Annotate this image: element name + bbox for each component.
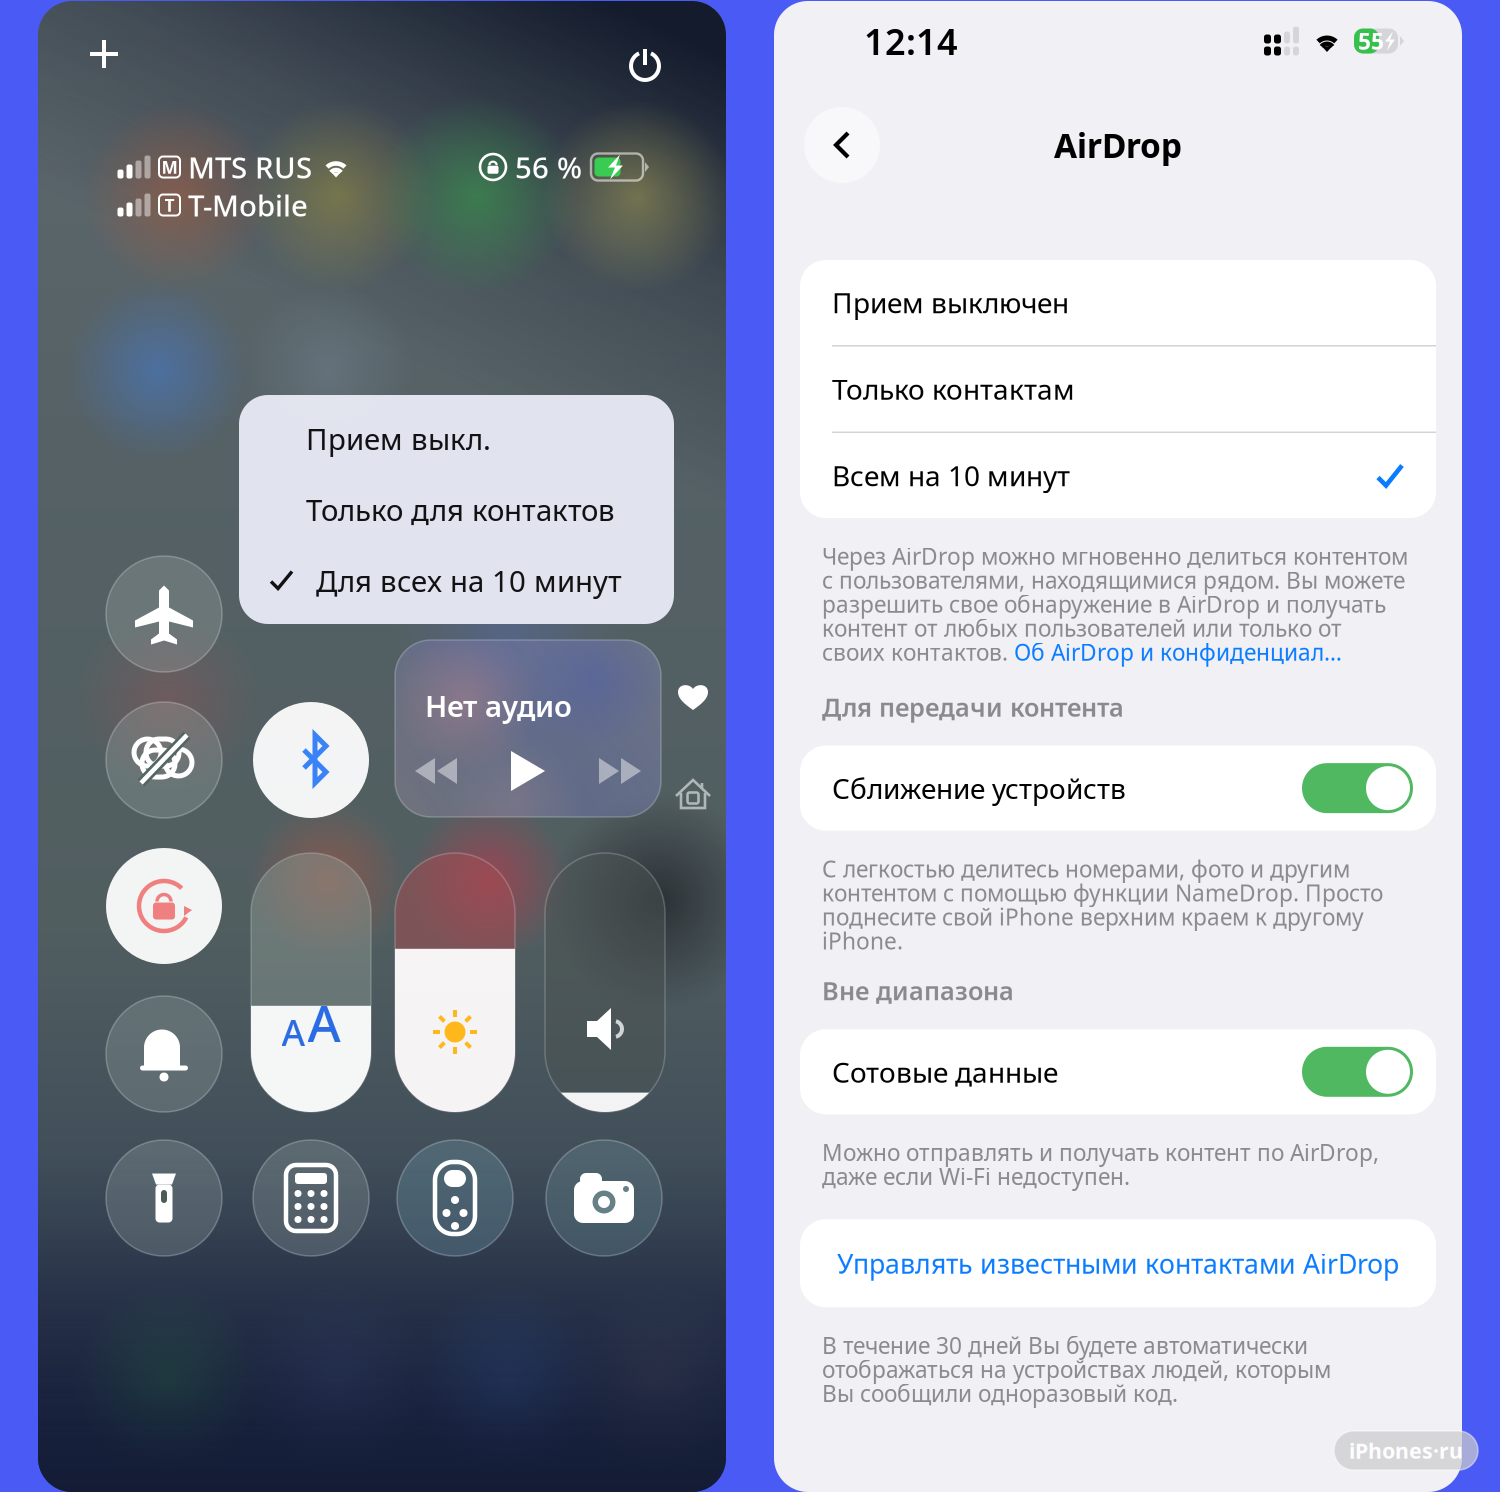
- staticText: A: [307, 989, 340, 1056]
- staticText: Вы сообщили одноразовый код.: [822, 1378, 1178, 1408]
- staticText: 55: [1358, 26, 1384, 56]
- button[interactable]: Flashlight: [106, 1140, 222, 1256]
- button[interactable]: Сближение устройств: [800, 746, 1436, 831]
- button[interactable]: Back: [804, 107, 880, 183]
- staticText: 12:14: [864, 17, 958, 65]
- button[interactable]: Home: [676, 779, 710, 809]
- staticText: iPhones·ru: [1349, 1436, 1463, 1465]
- button[interactable]: Rotation lock: [106, 848, 222, 964]
- staticText: 56 %: [515, 147, 582, 186]
- staticText: Через AirDrop можно мгновенно делиться к…: [822, 541, 1408, 571]
- button[interactable]: Всем на 10 минут: [800, 433, 1436, 518]
- staticText: контент от любых пользователей или тольк…: [822, 613, 1342, 643]
- button[interactable]: Cellular data: [106, 702, 222, 818]
- button[interactable]: Только контактам: [800, 346, 1436, 431]
- button[interactable]: Favourites: [678, 683, 708, 711]
- staticText: разрешить свое обнаружение в AirDrop и п…: [822, 589, 1386, 619]
- staticText: Можно отправлять и получать контент по A…: [822, 1137, 1379, 1167]
- button[interactable]: Brightness: [395, 853, 515, 1112]
- staticText: В течение 30 дней Вы будете автоматическ…: [822, 1330, 1308, 1360]
- staticText: iPhone.: [822, 926, 903, 956]
- button[interactable]: Только для контактов: [239, 474, 674, 545]
- staticText: Только контактам: [832, 370, 1075, 408]
- staticText: Нет аудио: [425, 686, 572, 725]
- staticText: Только для контактов: [306, 490, 615, 529]
- button[interactable]: Text size: [251, 853, 371, 1112]
- button[interactable]: Airplane mode: [106, 556, 222, 672]
- button[interactable]: Прием выключен: [800, 260, 1436, 345]
- staticText: поднесите свой iPhone верхним краем к др…: [822, 902, 1364, 932]
- button[interactable]: Silent mode: [106, 996, 222, 1112]
- button[interactable]: Volume: [545, 853, 665, 1112]
- button[interactable]: Управлять известными контактами AirDrop: [800, 1219, 1436, 1307]
- button[interactable]: Add control: [88, 38, 144, 94]
- staticText: с пользователями, находящимися рядом. Вы…: [822, 565, 1405, 595]
- staticText: Сотовые данные: [832, 1053, 1058, 1090]
- staticText: T-Mobile: [188, 185, 308, 224]
- staticText: своих контактов.: [822, 637, 1014, 667]
- button[interactable]: Remote: [397, 1140, 513, 1256]
- button[interactable]: Bluetooth: [253, 702, 369, 818]
- button[interactable]: Для всех на 10 минут: [239, 545, 674, 616]
- staticText: С легкостью делитесь номерами, фото и др…: [822, 854, 1350, 884]
- staticText: MTS RUS: [188, 147, 312, 186]
- button[interactable]: Camera: [546, 1140, 662, 1256]
- staticText: отображаться на устройствах людей, котор…: [822, 1354, 1331, 1384]
- staticText: M: [161, 155, 177, 178]
- staticText: AirDrop: [1054, 123, 1182, 167]
- staticText: A: [281, 1008, 305, 1056]
- staticText: T: [164, 193, 174, 216]
- staticText: Управлять известными контактами AirDrop: [837, 1246, 1399, 1281]
- button[interactable]: Прием выкл.: [239, 403, 674, 474]
- button[interactable]: Power: [628, 48, 662, 86]
- staticText: Сближение устройств: [832, 770, 1126, 807]
- staticText: Всем на 10 минут: [832, 457, 1070, 494]
- staticText: Для всех на 10 минут: [316, 561, 622, 600]
- button[interactable]: Calculator: [253, 1140, 369, 1256]
- staticText: Прием выкл.: [306, 419, 491, 458]
- staticText: Вне диапазона: [822, 974, 1014, 1007]
- button[interactable]: Об AirDrop и конфиденциал…: [1014, 637, 1342, 667]
- staticText: Для передачи контента: [822, 690, 1124, 724]
- staticText: Прием выключен: [832, 284, 1069, 321]
- button[interactable]: Сотовые данные: [800, 1029, 1436, 1114]
- staticText: Об AirDrop и конфиденциал…: [1014, 637, 1342, 667]
- staticText: контентом с помощью функции NameDrop. Пр…: [822, 878, 1383, 908]
- staticText: даже если Wi-Fi недоступен.: [822, 1161, 1130, 1191]
